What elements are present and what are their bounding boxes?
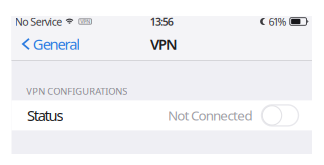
staticText: VPN	[150, 34, 178, 54]
staticText: Not Connected	[168, 106, 252, 124]
button[interactable]: General	[11, 27, 88, 61]
staticText: Status	[27, 106, 63, 125]
button[interactable]: Status	[11, 100, 312, 130]
staticText: 13:56	[150, 14, 174, 29]
staticText: General	[33, 34, 80, 54]
staticText: VPN	[80, 18, 90, 25]
staticText: No Service	[15, 14, 62, 29]
staticText: 61%	[268, 14, 286, 29]
staticText: VPN CONFIGURATIONS	[26, 85, 127, 97]
